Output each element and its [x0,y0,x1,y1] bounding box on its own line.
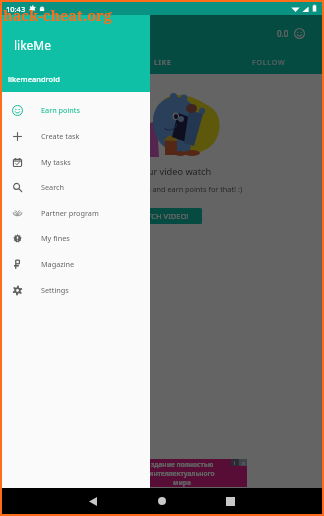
staticText: x [242,459,245,466]
staticText: hack-cheat.org [3,5,112,25]
button[interactable]: My tasks [2,149,150,175]
button[interactable]: Back [59,488,127,514]
button[interactable]: Settings [2,277,150,303]
staticText: мира [173,478,191,487]
staticText: Earn points [41,105,80,115]
staticText: FOLLOW [252,58,286,68]
staticText: Just watch the video and earn points for… [2,184,322,194]
staticText: likeMe [14,37,52,53]
staticText: Magazine [41,259,75,269]
button[interactable]: Search [2,174,150,200]
button[interactable]: Recent apps [196,488,265,514]
staticText: likemeandroid [8,74,60,84]
button[interactable]: Earn points [2,97,150,123]
staticText: i [234,459,236,466]
staticText: Watch our video watch [2,165,322,178]
button[interactable]: FOLLOW [216,52,322,74]
staticText: My tasks [41,157,71,167]
button[interactable]: Test Ad [77,459,247,487]
staticText: LIKE [154,58,172,68]
staticText: 0.0 [277,28,289,39]
staticText: WATCH VIDEO! [136,211,189,221]
staticText: Create task [41,131,80,141]
staticText: Partner program [41,208,99,218]
button[interactable]: Create task [2,123,150,149]
button[interactable]: LIKE [109,52,216,74]
staticText: 10:43 [6,4,26,14]
button[interactable]: Home [127,488,196,514]
button[interactable]: My fines [2,225,150,251]
staticText: интеллектуального [149,469,215,478]
staticText: здание полностью [151,460,214,469]
staticText: Settings [41,285,69,295]
staticText: My fines [41,233,70,243]
button[interactable]: WATCH VIDEO! [123,208,202,224]
button[interactable]: Your points [293,27,306,40]
button[interactable]: Magazine [2,251,150,277]
button[interactable]: Partner program [2,200,150,226]
staticText: Search [41,182,65,192]
